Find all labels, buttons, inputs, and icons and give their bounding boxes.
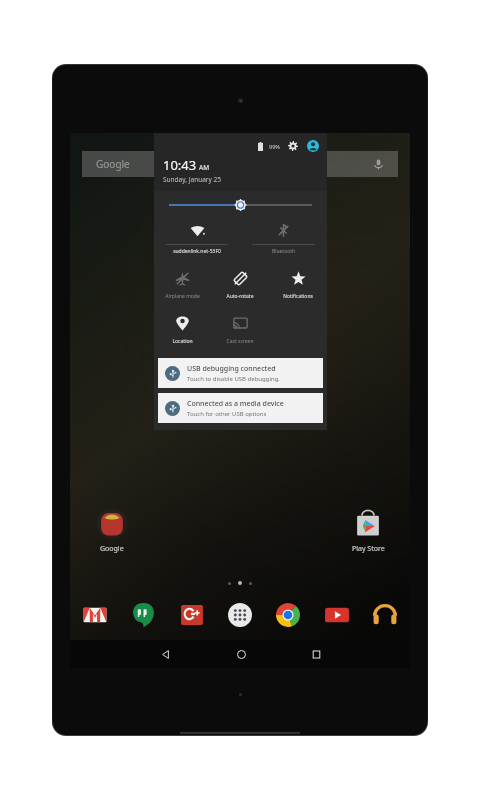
staticText: Sunday, January 25 (163, 175, 221, 184)
staticText: Touch to disable USB debugging. (187, 375, 280, 383)
staticText: 99% (269, 143, 280, 150)
button[interactable]: Google (84, 507, 140, 554)
button[interactable]: Chrome (272, 599, 304, 631)
button[interactable]: Home (228, 641, 254, 667)
staticText: Airplane mode (155, 293, 210, 300)
button[interactable]: Gmail (79, 599, 111, 631)
button[interactable]: Cast screen (211, 309, 269, 353)
staticText: 10:43 (163, 156, 197, 174)
staticText: Location (155, 338, 210, 345)
button[interactable]: YouTube (321, 599, 353, 631)
button[interactable]: Play Music (369, 599, 401, 631)
button[interactable]: Bluetooth (240, 219, 327, 264)
staticText: suddenlink.net-53F0 (156, 248, 238, 255)
button[interactable]: Apps (224, 599, 256, 631)
button[interactable]: Settings (286, 139, 300, 153)
staticText: Connected as a media device (187, 399, 284, 409)
staticText: Google (100, 544, 124, 554)
staticText: Touch for other USB options (187, 410, 267, 418)
button[interactable] (154, 191, 327, 219)
button[interactable]: Play Store (340, 507, 396, 554)
staticText: Google (96, 157, 130, 171)
button[interactable]: Back (152, 641, 178, 667)
button[interactable]: Auto-rotate (211, 264, 269, 309)
button[interactable]: Recents (303, 641, 329, 667)
button[interactable]: USB debugging connected (158, 358, 323, 388)
button[interactable]: Airplane mode (154, 264, 211, 309)
button[interactable]: Google Plus (176, 599, 208, 631)
staticText: Cast screen (212, 338, 268, 345)
button[interactable]: Hangouts (127, 599, 159, 631)
staticText: Bluetooth (242, 248, 325, 255)
button[interactable]: suddenlink.net-53F0 (154, 219, 240, 264)
staticText: AM (199, 163, 210, 172)
staticText: Auto-rotate (212, 293, 268, 300)
button[interactable]: Location (154, 309, 211, 353)
staticText: Notifications (270, 293, 326, 300)
button[interactable]: Connected as a media device (158, 393, 323, 423)
button[interactable]: User (306, 139, 320, 153)
staticText: Play Store (352, 544, 385, 554)
button[interactable]: Notifications (269, 264, 327, 309)
staticText: USB debugging connected (187, 364, 276, 374)
button[interactable]: Google (82, 151, 398, 177)
